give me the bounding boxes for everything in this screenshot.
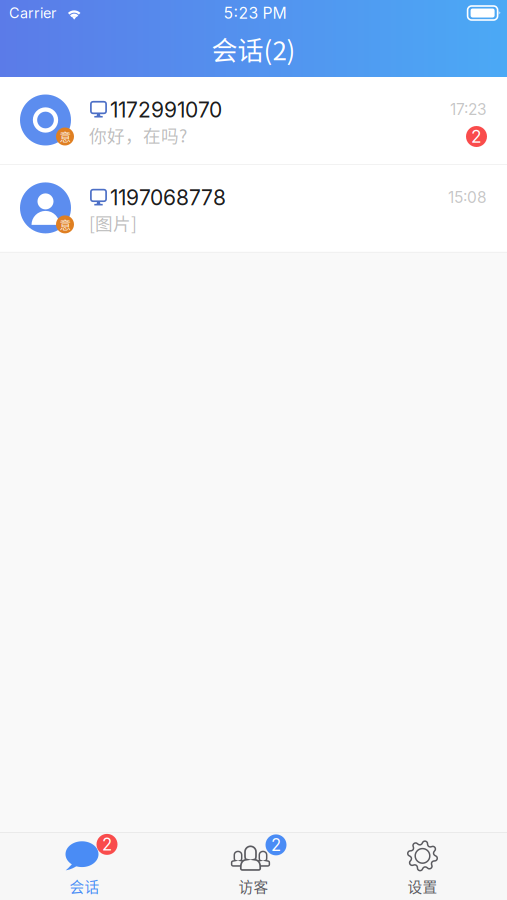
button[interactable]: 设置 bbox=[338, 828, 507, 900]
staticText: 2 bbox=[102, 834, 112, 854]
staticText: 会话(2) bbox=[211, 30, 295, 68]
staticText: 会话 bbox=[69, 875, 99, 897]
staticText: 意 bbox=[59, 216, 70, 233]
staticText: 意 bbox=[59, 128, 70, 145]
staticText: 1172991070 bbox=[110, 97, 222, 122]
button[interactable]: 2 bbox=[169, 828, 338, 900]
button[interactable]: 意 bbox=[0, 77, 507, 164]
staticText: 17:23 bbox=[450, 100, 487, 119]
staticText: 15:08 bbox=[448, 188, 487, 207]
button[interactable]: 2 bbox=[0, 828, 169, 900]
staticText: Carrier bbox=[9, 4, 56, 22]
staticText: 2 bbox=[471, 126, 482, 147]
staticText: 5:23 PM bbox=[223, 3, 286, 22]
button[interactable]: 意 bbox=[0, 165, 507, 252]
staticText: 设置 bbox=[407, 875, 437, 897]
staticText: [图片] bbox=[89, 210, 137, 235]
staticText: 访客 bbox=[238, 875, 268, 897]
staticText: 1197068778 bbox=[110, 185, 226, 210]
staticText: 2 bbox=[271, 835, 281, 855]
staticText: 你好，在吗? bbox=[89, 122, 187, 147]
